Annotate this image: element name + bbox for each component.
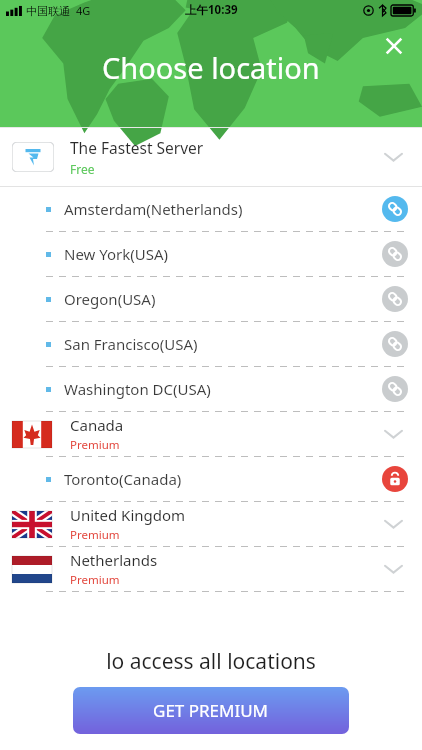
staticText: lo access all locations	[106, 647, 316, 676]
button[interactable]: Netherlands	[0, 547, 422, 591]
button[interactable]: Connect	[382, 196, 408, 222]
staticText: 4G	[76, 3, 91, 18]
button[interactable]: Expand	[378, 554, 408, 584]
button[interactable]: Connect	[382, 241, 408, 267]
staticText: Premium	[70, 437, 120, 453]
staticText: Premium	[70, 527, 120, 543]
staticText: Washington DC(USA)	[64, 379, 382, 399]
button[interactable]: Amsterdam(Netherlands)	[0, 187, 422, 231]
button[interactable]: Expand	[378, 419, 408, 449]
staticText: Premium	[70, 572, 120, 588]
staticText: Netherlands	[70, 550, 158, 570]
staticText: San Francisco(USA)	[64, 334, 382, 354]
staticText: Canada	[70, 415, 124, 435]
button[interactable]: San Francisco(USA)	[0, 322, 422, 366]
button[interactable]: Locked	[382, 466, 408, 492]
button[interactable]: Oregon(USA)	[0, 277, 422, 321]
button[interactable]: Canada	[0, 412, 422, 456]
staticText: The Fastest Server	[70, 137, 204, 158]
button[interactable]: Expand	[378, 142, 408, 172]
button[interactable]: Washington DC(USA)	[0, 367, 422, 411]
button[interactable]: Close	[372, 24, 416, 68]
staticText: Free	[70, 161, 95, 177]
staticText: United Kingdom	[70, 505, 186, 525]
button[interactable]: United Kingdom	[0, 502, 422, 546]
button[interactable]: GET PREMIUM	[73, 687, 349, 734]
staticText: Choose location	[102, 48, 320, 87]
staticText: 上午10:39	[185, 2, 238, 18]
button[interactable]: Connect	[382, 286, 408, 312]
staticText: Amsterdam(Netherlands)	[64, 199, 382, 219]
button[interactable]: New York(USA)	[0, 232, 422, 276]
button[interactable]: Connect	[382, 376, 408, 402]
staticText: GET PREMIUM	[153, 699, 269, 722]
button[interactable]: Toronto(Canada)	[0, 457, 422, 501]
staticText: Toronto(Canada)	[64, 469, 382, 489]
button[interactable]: The Fastest Server	[0, 128, 422, 186]
staticText: Oregon(USA)	[64, 289, 382, 309]
button[interactable]: Connect	[382, 331, 408, 357]
staticText: New York(USA)	[64, 244, 382, 264]
button[interactable]: Expand	[378, 509, 408, 539]
staticText: 中国联通	[26, 4, 70, 18]
